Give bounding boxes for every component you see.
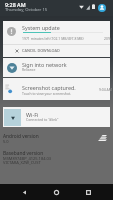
staticText: 9:28 AM: [5, 1, 26, 8]
button[interactable]: CANCEL DOWNLOAD: [3, 44, 110, 57]
staticText: System update: [22, 24, 60, 31]
staticText: 1971 minutes left (102.1 MB/497.8 MB): [22, 36, 84, 41]
staticText: Screenshot captured.: [22, 84, 76, 91]
button[interactable]: Wi-Fi: [3, 107, 110, 127]
staticText: VICTARA_XZW_CUST: [3, 160, 41, 165]
staticText: CANCEL DOWNLOAD: [22, 48, 60, 53]
staticText: Sign into network: [22, 61, 67, 68]
staticText: MSM8974BP_4125.184.03: [3, 156, 52, 161]
staticText: Connected to "dlink": [26, 117, 59, 122]
button[interactable]: Sign into network: [3, 58, 110, 77]
button[interactable]: Back: [17, 184, 32, 200]
staticText: 5.0: [3, 139, 9, 144]
button[interactable]: System update: [3, 21, 110, 57]
staticText: Android version: [3, 133, 39, 140]
staticText: Wi-Fi: [26, 111, 39, 118]
staticText: 20%: [104, 36, 111, 41]
staticText: Baseband version: [3, 150, 44, 157]
button[interactable]: User profile: [98, 4, 106, 12]
staticText: 9:04 AM: [99, 87, 112, 92]
button[interactable]: Screenshot captured.: [3, 78, 110, 100]
button[interactable]: Home: [49, 184, 64, 200]
staticText: Reliance: [22, 67, 36, 72]
staticText: Thursday, October 15: [5, 7, 48, 13]
button[interactable]: Recent apps: [81, 184, 96, 200]
staticText: Touch to view your screenshot.: [22, 91, 72, 96]
